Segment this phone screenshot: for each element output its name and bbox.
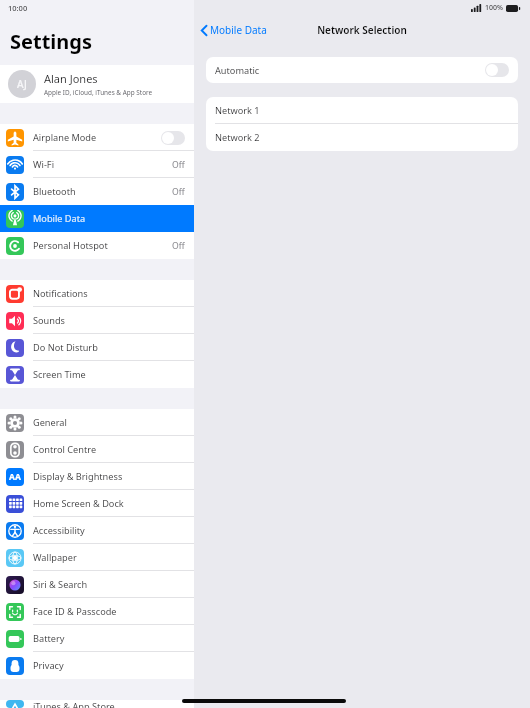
button[interactable]: Airplane Mode xyxy=(0,124,194,151)
staticText: Mobile Data xyxy=(210,23,267,37)
staticText: 100% xyxy=(485,3,503,13)
staticText: Notifications xyxy=(33,287,88,300)
button[interactable]: Siri & Search xyxy=(0,571,194,598)
button[interactable]: Network 2 xyxy=(206,124,518,151)
staticText: AJ xyxy=(17,77,27,91)
staticText: Network 2 xyxy=(215,131,260,144)
button[interactable]: Network 1 xyxy=(206,97,518,124)
staticText: Alan Jones xyxy=(44,71,98,86)
button[interactable]: Screen Time xyxy=(0,361,194,388)
staticText: AA xyxy=(9,471,21,483)
button[interactable]: Automatic network selection toggle xyxy=(485,63,509,77)
button[interactable]: Privacy xyxy=(0,652,194,679)
button[interactable]: Do Not Disturb xyxy=(0,334,194,361)
staticText: Face ID & Passcode xyxy=(33,605,117,618)
button[interactable]: Accessibility xyxy=(0,517,194,544)
button[interactable]: Personal Hotspot xyxy=(0,232,194,259)
button[interactable]: Airplane Mode toggle xyxy=(161,131,185,145)
button[interactable]: Wi-Fi xyxy=(0,151,194,178)
staticText: Screen Time xyxy=(33,368,86,381)
staticText: Battery xyxy=(33,632,65,645)
staticText: Bluetooth xyxy=(33,185,76,198)
button[interactable]: Mobile Data xyxy=(0,205,194,232)
staticText: Personal Hotspot xyxy=(33,239,108,252)
button[interactable]: iTunes & App Store xyxy=(0,700,194,708)
staticText: Settings xyxy=(10,28,92,55)
button[interactable]: General xyxy=(0,409,194,436)
button[interactable]: Wallpaper xyxy=(0,544,194,571)
staticText: Apple ID, iCloud, iTunes & App Store xyxy=(44,88,153,97)
staticText: 10:00 xyxy=(8,3,28,13)
staticText: iTunes & App Store xyxy=(33,700,115,708)
staticText: Home Screen & Dock xyxy=(33,497,124,510)
staticText: Control Centre xyxy=(33,443,97,456)
staticText: Airplane Mode xyxy=(33,131,97,144)
button[interactable]: Face ID & Passcode xyxy=(0,598,194,625)
staticText: Display & Brightness xyxy=(33,470,123,483)
staticText: Network 1 xyxy=(215,104,260,117)
staticText: Privacy xyxy=(33,659,64,672)
button[interactable]: Notifications xyxy=(0,280,194,307)
button[interactable]: Automatic xyxy=(206,57,518,83)
button[interactable]: AA xyxy=(0,463,194,490)
staticText: Off xyxy=(172,240,185,252)
staticText: Wallpaper xyxy=(33,551,77,564)
button[interactable]: Sounds xyxy=(0,307,194,334)
staticText: Off xyxy=(172,159,185,171)
button[interactable]: Battery xyxy=(0,625,194,652)
staticText: General xyxy=(33,416,67,429)
staticText: Sounds xyxy=(33,314,66,327)
staticText: Automatic xyxy=(215,64,260,77)
button[interactable]: Bluetooth xyxy=(0,178,194,205)
staticText: Wi-Fi xyxy=(33,158,55,171)
staticText: Siri & Search xyxy=(33,578,88,591)
staticText: Mobile Data xyxy=(33,212,86,225)
button[interactable]: Control Centre xyxy=(0,436,194,463)
staticText: Off xyxy=(172,186,185,198)
button[interactable]: Mobile Data xyxy=(199,20,269,40)
staticText: Do Not Disturb xyxy=(33,341,98,354)
staticText: Network Selection xyxy=(317,23,407,37)
button[interactable]: Home Screen & Dock xyxy=(0,490,194,517)
staticText: Accessibility xyxy=(33,524,85,537)
button[interactable]: AJ xyxy=(0,65,194,103)
